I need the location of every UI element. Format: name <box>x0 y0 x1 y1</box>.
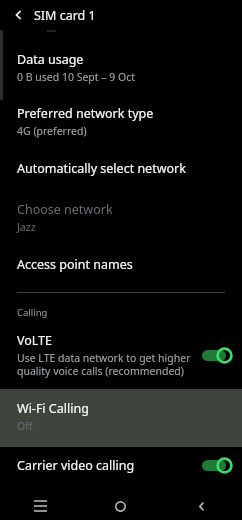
staticText: SIM card 1 <box>34 7 96 24</box>
button[interactable]: Navigate up <box>8 4 30 26</box>
button[interactable]: Access point names <box>0 247 242 285</box>
staticText: Jazz <box>17 220 36 234</box>
staticText: Use LTE data network to get higher quali… <box>17 351 191 378</box>
staticText: Carrier video calling <box>17 457 135 474</box>
staticText: Off <box>17 419 33 433</box>
staticText: Preferred network type <box>17 105 154 122</box>
staticText: Choose network <box>17 201 113 218</box>
staticText: Data usage <box>17 51 84 68</box>
button[interactable]: Choose network <box>0 193 242 247</box>
button[interactable]: Back <box>161 492 242 520</box>
staticText: 4G (preferred) <box>17 124 87 138</box>
button[interactable]: VoLTE <box>0 328 242 389</box>
staticText: Calling <box>17 306 48 319</box>
button[interactable]: Toggle <box>202 348 232 363</box>
button[interactable]: Preferred network type <box>0 97 242 151</box>
staticText: Automatically select network <box>17 160 186 177</box>
staticText: VoLTE <box>17 332 53 349</box>
button[interactable]: Toggle <box>202 458 232 473</box>
button[interactable]: Recent apps <box>0 492 80 520</box>
button[interactable]: Wi-Fi Calling <box>0 389 242 447</box>
staticText: 0 B used 10 Sept – 9 Oct <box>17 70 136 84</box>
button[interactable]: Carrier video calling <box>0 447 242 484</box>
staticText: Access point names <box>17 256 133 273</box>
button[interactable]: Automatically select network <box>0 151 242 193</box>
staticText: Wi-Fi Calling <box>17 400 89 417</box>
button[interactable]: Data usage <box>0 40 242 97</box>
button[interactable]: Home <box>80 492 161 520</box>
